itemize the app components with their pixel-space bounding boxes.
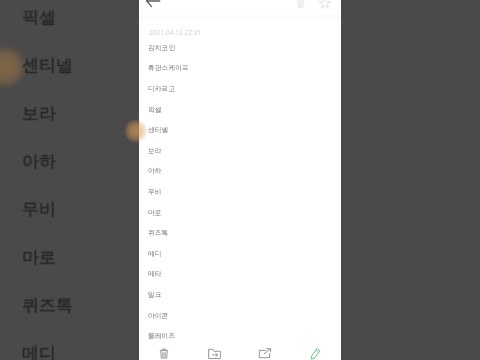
staticText: 퀴즈톡 xyxy=(22,295,73,316)
staticText: 아하 xyxy=(21,151,55,172)
staticText: 블레이즈 xyxy=(148,331,176,340)
button[interactable]: 밀크 xyxy=(139,284,341,305)
staticText: 센티넬 xyxy=(148,125,169,134)
staticText: 메디 xyxy=(23,343,57,360)
staticText: 메디 xyxy=(22,342,56,360)
staticText: 센티넬 xyxy=(22,56,73,77)
button[interactable]: 아이콘 xyxy=(139,305,341,326)
staticText: 메디 xyxy=(22,344,56,360)
button[interactable]: Share xyxy=(239,343,290,360)
button[interactable]: 마로 xyxy=(139,202,341,223)
staticText: 마로 xyxy=(22,248,56,269)
staticText: 밀크 xyxy=(148,290,162,299)
staticText: 센티넬 xyxy=(22,54,73,75)
staticText: 무비 xyxy=(22,200,56,221)
staticText: 센티넬 xyxy=(22,55,73,76)
staticText: 퀴즈톡 xyxy=(148,228,169,237)
staticText: 마로 xyxy=(148,208,162,217)
staticText: 픽셀 xyxy=(22,7,56,28)
button[interactable]: 메타 xyxy=(139,263,341,284)
staticText: 보라 xyxy=(21,103,55,124)
staticText: 보라 xyxy=(22,102,56,123)
button[interactable]: 메디 xyxy=(139,243,341,264)
button[interactable]: 픽셀 xyxy=(139,99,341,120)
staticText: 메디 xyxy=(148,249,162,258)
staticText: 아이콘 xyxy=(148,311,169,320)
staticText: 아하 xyxy=(23,151,57,172)
button[interactable]: 센티넬 xyxy=(139,119,341,140)
staticText: 김치코인 xyxy=(148,43,176,52)
staticText: 픽셀 xyxy=(21,7,55,28)
button[interactable]: 휴먼스케이프 xyxy=(139,57,341,78)
staticText: 픽셀 xyxy=(148,105,162,114)
staticText: 보라 xyxy=(22,103,56,124)
staticText: 무비 xyxy=(21,199,55,220)
staticText: 무비 xyxy=(148,187,162,196)
staticText: 메타 xyxy=(148,269,162,278)
button[interactable]: Back xyxy=(142,0,164,12)
button[interactable]: Delete xyxy=(291,0,309,12)
staticText: 센티넬 xyxy=(23,55,74,76)
staticText: 보라 xyxy=(23,103,57,124)
staticText: 보라 xyxy=(148,146,162,155)
staticText: 센티넬 xyxy=(21,55,72,76)
staticText: 마로 xyxy=(22,246,56,267)
button[interactable]: 보라 xyxy=(139,140,341,161)
staticText: 아하 xyxy=(22,151,56,172)
staticText: 마로 xyxy=(23,247,57,268)
button[interactable]: Favourite xyxy=(316,0,334,12)
staticText: 퀴즈톡 xyxy=(23,295,74,316)
button[interactable]: 블레이즈 xyxy=(139,325,341,346)
staticText: 퀴즈톡 xyxy=(21,295,72,316)
staticText: 픽셀 xyxy=(23,7,57,28)
staticText: 퀴즈톡 xyxy=(22,294,73,315)
button[interactable]: 디카르고 xyxy=(139,78,341,99)
staticText: 마로 xyxy=(21,247,55,268)
button[interactable]: Delete xyxy=(139,343,189,360)
staticText: 픽셀 xyxy=(22,8,56,29)
staticText: 무비 xyxy=(23,199,57,220)
staticText: 2021.04.12 22:31 xyxy=(149,28,202,37)
staticText: 디카르고 xyxy=(148,84,176,93)
staticText: 무비 xyxy=(22,198,56,219)
button[interactable]: 무비 xyxy=(139,181,341,202)
staticText: 아하 xyxy=(22,150,56,171)
staticText: 보라 xyxy=(22,104,56,125)
button[interactable]: Edit xyxy=(290,343,341,360)
button[interactable]: 아하 xyxy=(139,160,341,181)
staticText: 메디 xyxy=(22,343,56,360)
staticText: 메디 xyxy=(21,343,55,360)
staticText: 무비 xyxy=(22,199,56,220)
staticText: 아하 xyxy=(148,166,162,175)
staticText: 아하 xyxy=(22,152,56,173)
button[interactable]: 퀴즈톡 xyxy=(139,222,341,243)
staticText: 퀴즈톡 xyxy=(22,296,73,317)
staticText: 마로 xyxy=(22,247,56,268)
button[interactable]: Move to folder xyxy=(189,343,239,360)
staticText: 픽셀 xyxy=(22,6,56,27)
staticText: 휴먼스케이프 xyxy=(148,63,189,72)
button[interactable]: 김치코인 xyxy=(139,37,341,58)
